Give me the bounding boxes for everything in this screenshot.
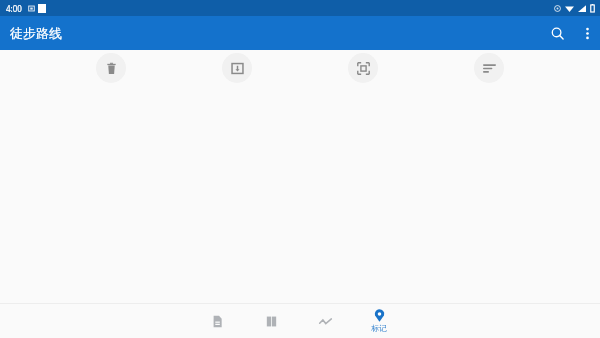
button[interactable]: More options — [574, 16, 600, 50]
button[interactable]: Map — [244, 304, 298, 338]
button[interactable]: Import — [222, 53, 252, 83]
staticText: 4:00 — [6, 3, 22, 14]
button[interactable]: 标记 — [352, 304, 406, 338]
staticText: 徒步路线 — [10, 25, 62, 41]
button[interactable]: Search — [540, 16, 574, 50]
button[interactable]: Chart — [298, 304, 352, 338]
button[interactable]: Sort — [474, 53, 504, 83]
staticText: 标记 — [371, 323, 387, 333]
button[interactable]: Documents — [190, 304, 244, 338]
button[interactable]: Delete — [96, 53, 126, 83]
button[interactable]: Scan — [348, 53, 378, 83]
